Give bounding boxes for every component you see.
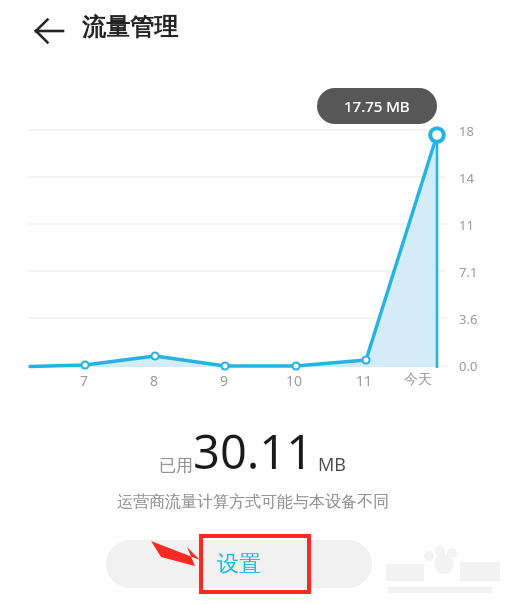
- staticText: 10: [286, 371, 303, 390]
- staticText: 今天: [404, 371, 432, 389]
- staticText: 17.75 MB: [344, 96, 410, 116]
- staticText: 运营商流量计算方式可能与本设备不同: [0, 492, 506, 512]
- staticText: MB: [318, 452, 347, 477]
- staticText: 3.6: [459, 310, 478, 328]
- staticText: 11: [459, 216, 474, 234]
- staticText: 7: [80, 371, 89, 390]
- button[interactable]: 设置: [106, 540, 372, 588]
- staticText: 7.1: [459, 263, 478, 281]
- staticText: 30.11: [193, 419, 314, 483]
- staticText: 流量管理: [82, 12, 178, 42]
- staticText: 8: [150, 371, 159, 390]
- staticText: 9: [220, 371, 229, 390]
- staticText: 18: [459, 122, 474, 140]
- staticText: 0.0: [459, 357, 478, 375]
- staticText: 已用: [159, 455, 193, 476]
- staticText: 14: [459, 169, 474, 187]
- button[interactable]: Back: [28, 10, 70, 52]
- staticText: 设置: [217, 550, 261, 578]
- staticText: 11: [356, 371, 373, 390]
